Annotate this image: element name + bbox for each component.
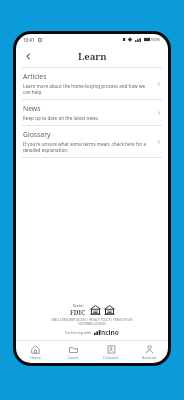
staticText: Glossary [23,130,51,139]
button[interactable]: Contacts [92,341,130,363]
staticText: Loans [68,355,79,360]
button[interactable]: Articles [16,68,168,99]
staticText: SOFTWARE LICENSES [24,322,160,326]
staticText: Account [142,355,157,360]
staticText: Member [73,304,84,308]
staticText: Learn more about the home-buying process… [23,83,153,95]
button[interactable]: Home [16,341,54,363]
staticText: 100% [150,37,161,42]
staticText: ncino [101,328,119,337]
staticText: News [23,104,41,113]
staticText: FDIC [70,308,86,316]
staticText: Learn [78,50,107,63]
button[interactable]: Account [130,341,168,363]
button[interactable]: Glossary [16,126,168,157]
button[interactable]: Back [20,48,36,64]
button[interactable]: Loans [54,341,92,363]
staticText: Contacts [103,355,119,360]
staticText: Articles [23,72,47,81]
staticText: Keep up to date on the latest news. [23,115,99,121]
button[interactable]: News [16,100,168,125]
staticText: Home [30,355,41,360]
staticText: 10:41 [23,37,35,43]
staticText: If you're unsure what some terms mean, c… [23,141,153,153]
staticText: NMLS CONSUMER ACCESS | PRIVACY POLICY | … [24,318,160,322]
staticText: Partnering with [65,330,92,335]
